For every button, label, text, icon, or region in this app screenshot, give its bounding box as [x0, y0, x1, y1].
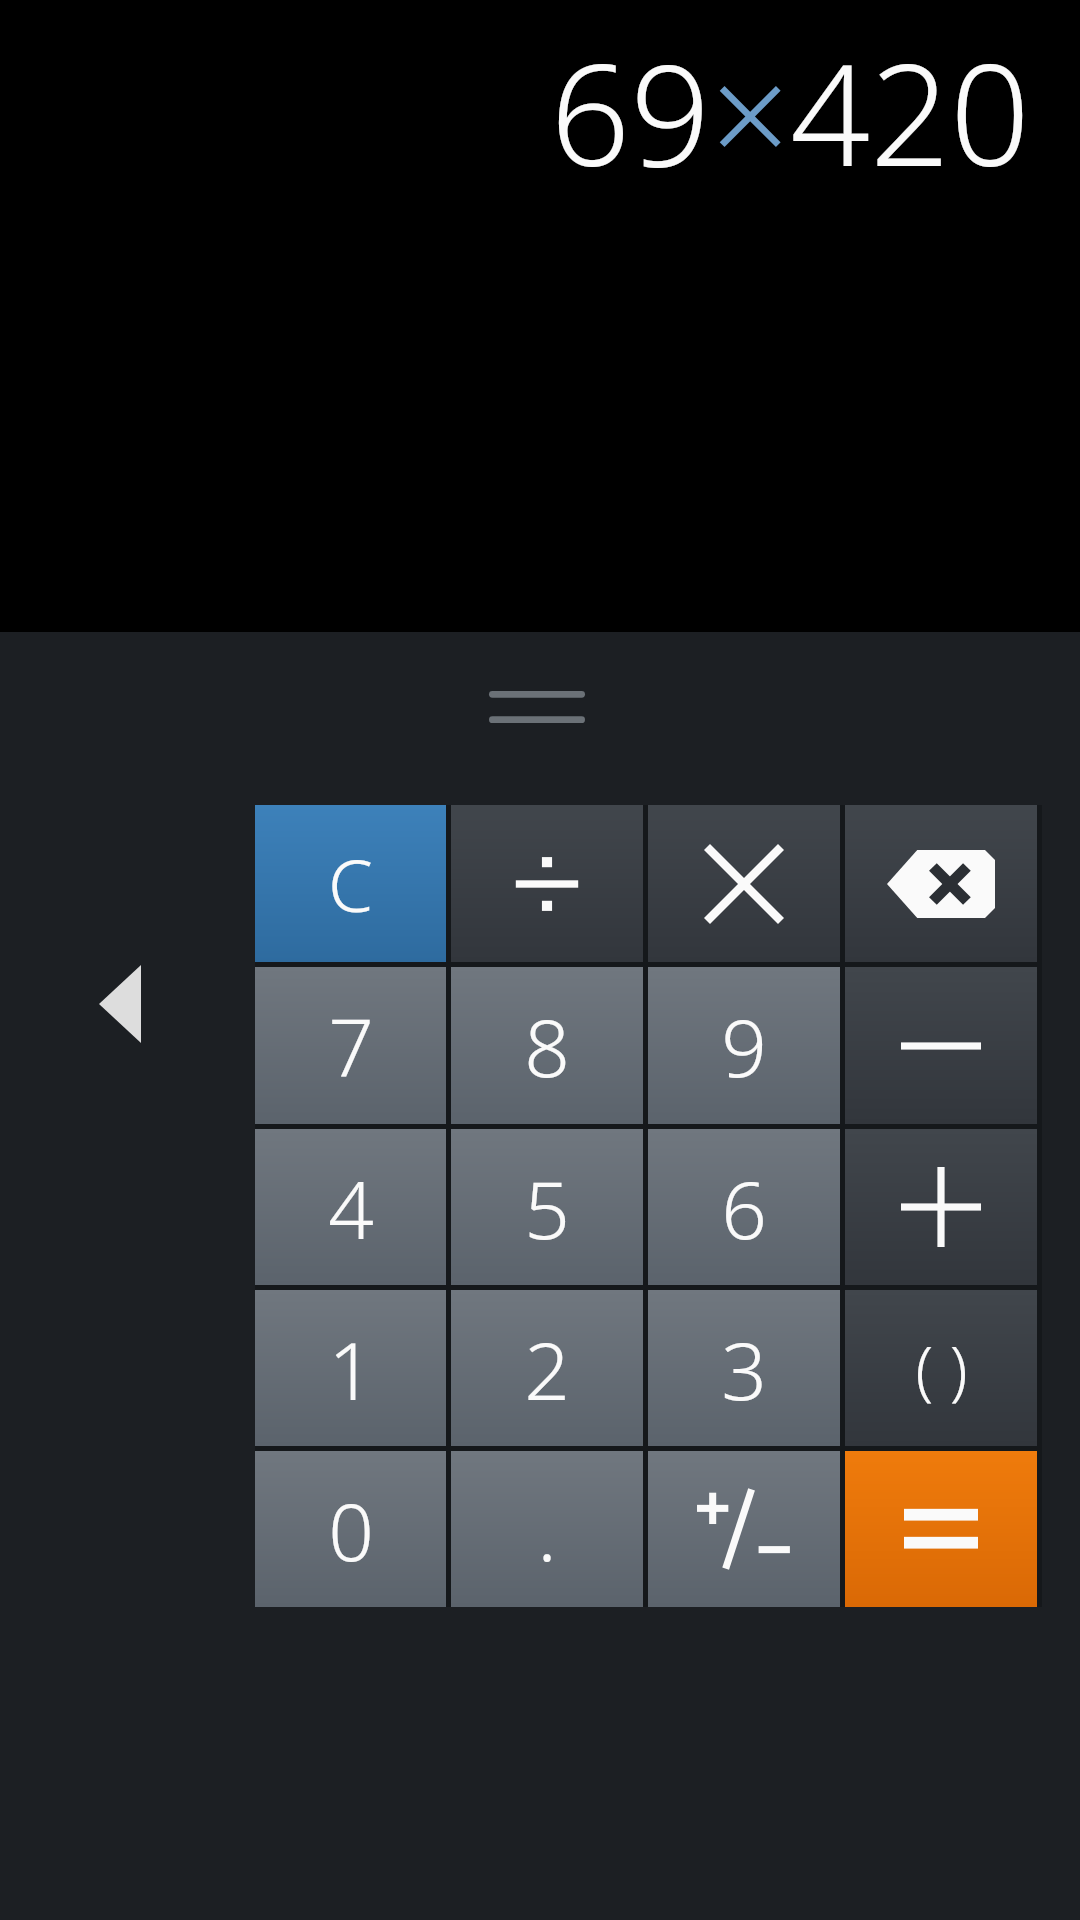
button[interactable]: Divide	[451, 805, 643, 962]
button[interactable]: Resize keypad	[485, 682, 589, 732]
button[interactable]: Previous	[58, 938, 182, 1070]
staticText: 1	[328, 1314, 374, 1423]
button[interactable]: Backspace	[845, 805, 1037, 962]
button[interactable]: 5	[451, 1129, 643, 1285]
staticText: 69×420	[550, 16, 1030, 207]
button[interactable]: Plus minus	[648, 1451, 840, 1607]
button[interactable]: 0	[255, 1451, 446, 1607]
button[interactable]: 6	[648, 1129, 840, 1285]
staticText: 3	[721, 1314, 767, 1423]
staticText: 0	[328, 1475, 374, 1584]
button[interactable]: Parentheses	[845, 1290, 1037, 1446]
button[interactable]: 3	[648, 1290, 840, 1446]
staticText: 2	[524, 1314, 570, 1423]
staticText: .	[537, 1475, 557, 1584]
staticText: 6	[721, 1153, 767, 1262]
staticText: 8	[524, 991, 570, 1100]
staticText: 7	[328, 991, 374, 1100]
button[interactable]: Multiply	[648, 805, 840, 962]
button[interactable]: 7	[255, 967, 446, 1124]
staticText: 9	[721, 991, 767, 1100]
staticText: C	[328, 835, 373, 933]
button[interactable]: 8	[451, 967, 643, 1124]
button[interactable]: 4	[255, 1129, 446, 1285]
staticText: 4	[328, 1153, 374, 1262]
button[interactable]: Minus	[845, 967, 1037, 1124]
button[interactable]: C	[255, 805, 446, 962]
staticText: 5	[524, 1153, 570, 1262]
button[interactable]: 2	[451, 1290, 643, 1446]
staticText: ( )	[915, 1325, 968, 1412]
button[interactable]: Plus	[845, 1129, 1037, 1285]
button[interactable]: Decimal point	[451, 1451, 643, 1607]
button[interactable]: 1	[255, 1290, 446, 1446]
button[interactable]: Equals	[845, 1451, 1037, 1607]
button[interactable]: 9	[648, 967, 840, 1124]
